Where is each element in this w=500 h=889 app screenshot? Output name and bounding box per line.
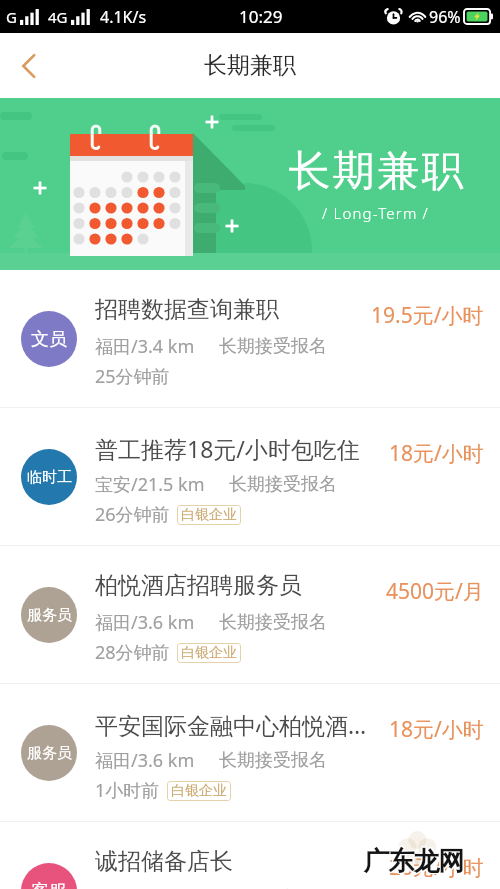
button[interactable]: 文员	[0, 270, 500, 407]
staticText: G	[6, 7, 17, 27]
staticText: 广东龙网	[363, 845, 463, 878]
staticText: 平安国际金融中心柏悦酒…	[95, 709, 367, 740]
staticText: 长期接受报名	[219, 335, 327, 358]
button[interactable]: 服务员	[0, 546, 500, 683]
staticText: 广东龙网	[363, 846, 463, 879]
staticText: 长期接受报名	[219, 749, 327, 772]
button[interactable]: 服务员	[0, 684, 500, 821]
staticText: 广东龙网	[364, 844, 464, 877]
staticText: 宝安/21.5 km	[95, 472, 205, 497]
staticText: 28分钟前	[95, 640, 170, 665]
staticText: 广东龙网	[365, 845, 465, 878]
staticText: 长期接受报名	[219, 611, 327, 634]
button[interactable]: 临时工	[0, 408, 500, 545]
staticText: 长期兼职	[204, 51, 296, 80]
staticText: 4500元/月	[386, 577, 484, 606]
staticText: 服务员	[27, 744, 72, 763]
staticText: 26分钟前	[95, 502, 170, 527]
staticText: 临时工	[27, 468, 72, 487]
staticText: 4G	[48, 7, 68, 27]
staticText: 18元/小时	[389, 439, 484, 468]
staticText: 广东龙网	[364, 845, 464, 878]
staticText: 10:29	[239, 5, 283, 28]
button[interactable]: 客服	[0, 822, 500, 889]
staticText: 广东龙网	[364, 846, 464, 879]
staticText: 20元/小时	[389, 853, 484, 882]
button[interactable]: Back	[0, 37, 58, 95]
staticText: 福田/3.6 km	[95, 610, 195, 635]
staticText: 广东龙网	[365, 844, 465, 877]
staticText: 文员	[31, 328, 67, 351]
staticText: / Long-Term /	[322, 203, 430, 223]
staticText: 客服	[31, 880, 67, 889]
staticText: 18元/小时	[389, 715, 484, 744]
staticText: 白银企业	[181, 506, 237, 524]
staticText: 福田/3.6 km	[95, 748, 195, 773]
staticText: 柏悦酒店招聘服务员	[95, 571, 302, 600]
staticText: 广东龙网	[363, 844, 463, 877]
staticText: 1小时前	[95, 778, 160, 803]
staticText: 白银企业	[171, 782, 227, 800]
staticText: 招聘数据查询兼职	[95, 295, 279, 324]
staticText: 广东龙网	[365, 846, 465, 879]
staticText: 服务员	[27, 606, 72, 625]
staticText: 25分钟前	[95, 364, 170, 389]
staticText: 96%	[429, 6, 461, 28]
staticText: 白银企业	[181, 644, 237, 662]
staticText: 诚招储备店长	[95, 847, 233, 876]
staticText: 19.5元/小时	[371, 301, 484, 330]
staticText: 普工推荐18元/小时包吃住	[95, 433, 360, 464]
staticText: 长期接受报名	[229, 473, 337, 496]
staticText: 长期兼职	[287, 145, 465, 198]
staticText: 福田/3.4 km	[95, 334, 195, 359]
staticText: 4.1K/s	[100, 6, 147, 28]
